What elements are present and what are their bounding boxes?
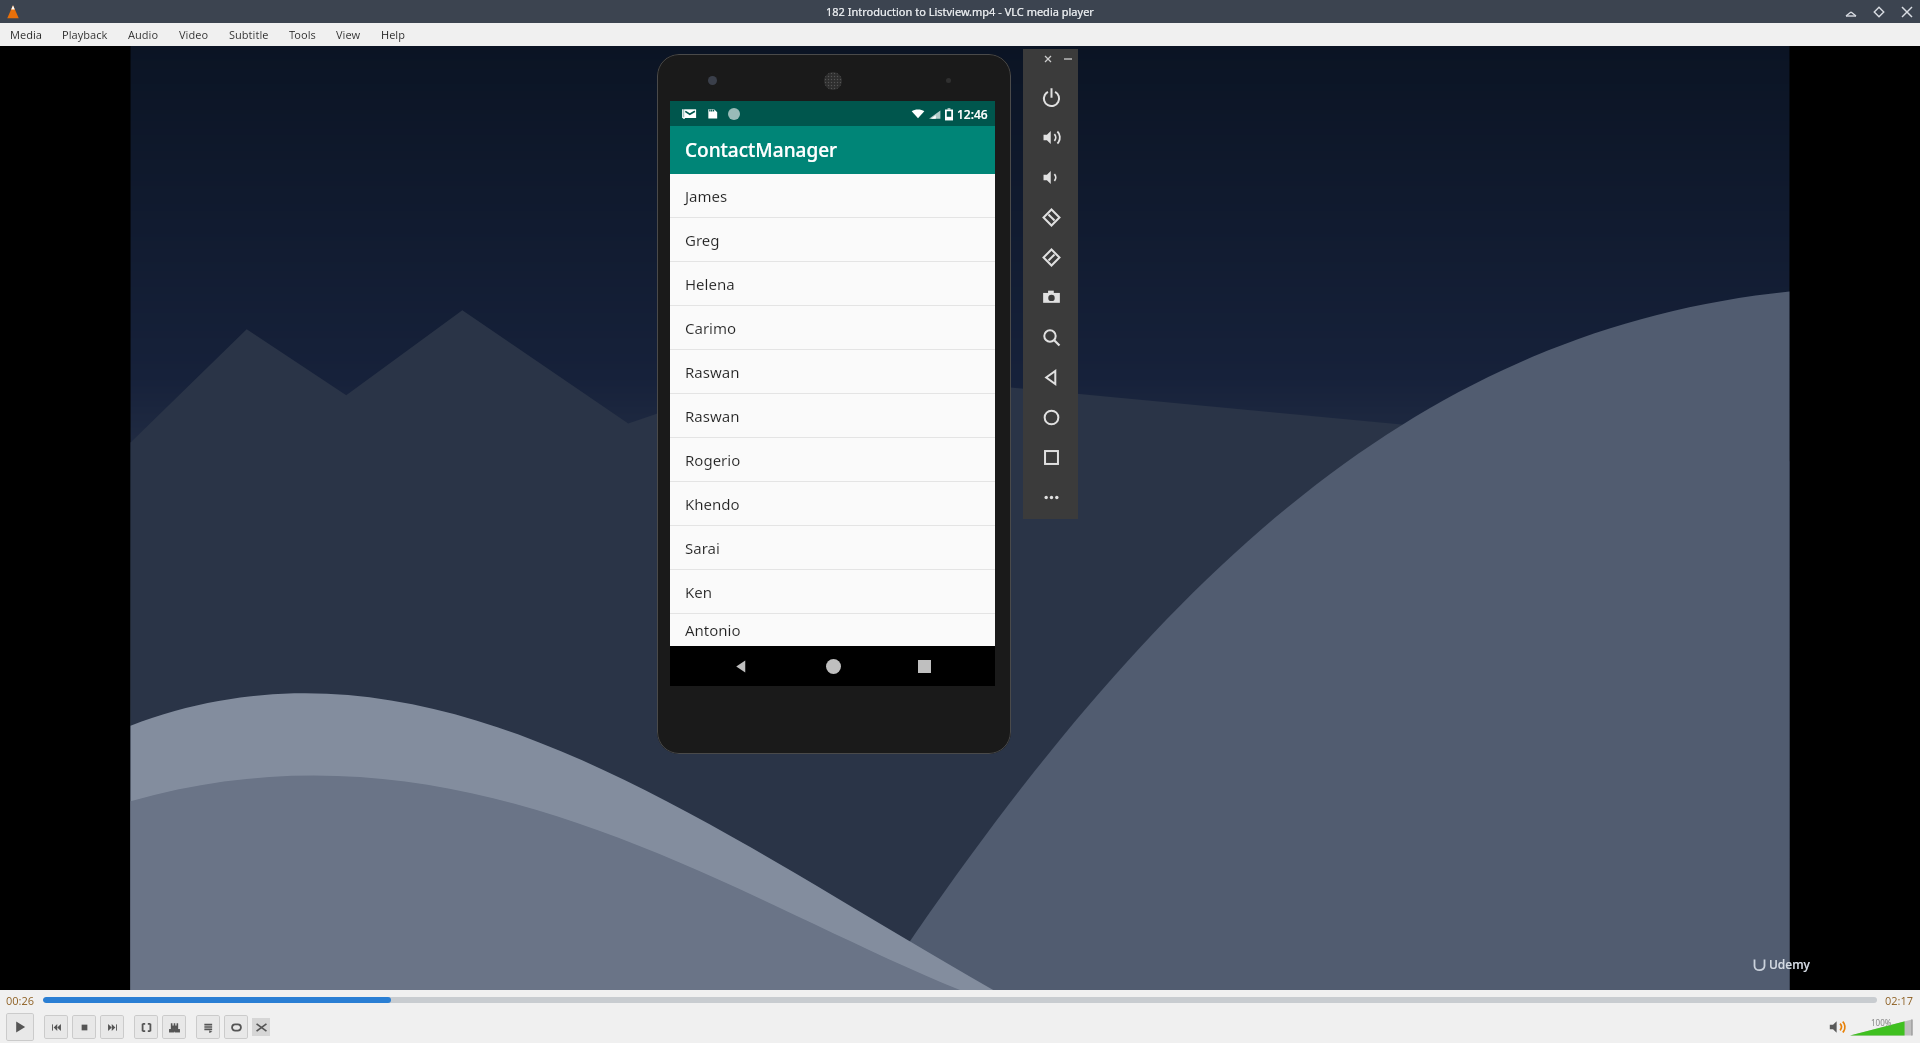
- staticText: ContactManager: [685, 137, 838, 163]
- button[interactable]: Rotate right: [1031, 237, 1071, 277]
- button[interactable]: Sarai: [670, 526, 995, 570]
- staticText: 02:17: [1885, 993, 1914, 1008]
- button[interactable]: Next: [100, 1015, 124, 1039]
- button[interactable]: Recents: [904, 646, 944, 686]
- button[interactable]: Volume up: [1031, 117, 1071, 157]
- button[interactable]: Zoom: [1031, 317, 1071, 357]
- button[interactable]: Audio: [118, 24, 169, 45]
- button[interactable]: Home: [813, 646, 853, 686]
- staticText: Video: [179, 27, 209, 42]
- staticText: Greg: [685, 230, 720, 250]
- button[interactable]: Playlist: [196, 1015, 220, 1039]
- staticText: James: [685, 186, 728, 206]
- button[interactable]: Rotate left: [1031, 197, 1071, 237]
- staticText: Media: [10, 27, 42, 42]
- button[interactable]: Helena: [670, 262, 995, 306]
- button[interactable]: Raswan: [670, 394, 995, 438]
- button[interactable]: Mute: [1828, 1018, 1846, 1036]
- button[interactable]: Close emulator: [1042, 53, 1054, 65]
- button[interactable]: Carimo: [670, 306, 995, 350]
- staticText: Raswan: [685, 362, 740, 382]
- staticText: Carimo: [685, 318, 737, 338]
- staticText: Udemy: [1769, 956, 1810, 972]
- button[interactable]: Volume: [1850, 1017, 1912, 1037]
- button[interactable]: James: [670, 174, 995, 218]
- button[interactable]: Greg: [670, 218, 995, 262]
- staticText: 182 Introduction to Listview.mp4 - VLC m…: [826, 4, 1094, 19]
- button[interactable]: Effects: [162, 1015, 186, 1039]
- button[interactable]: Khendo: [670, 482, 995, 526]
- staticText: Antonio: [685, 620, 741, 640]
- staticText: Sarai: [685, 538, 720, 558]
- button[interactable]: Stop: [72, 1015, 96, 1039]
- staticText: Helena: [685, 274, 735, 294]
- button[interactable]: Antonio: [670, 614, 995, 646]
- button[interactable]: Tools: [279, 24, 326, 45]
- button[interactable]: Fullscreen: [134, 1015, 158, 1039]
- button[interactable]: Minimize: [1844, 5, 1858, 19]
- staticText: 12:46: [957, 106, 988, 122]
- button[interactable]: Overview: [1031, 437, 1071, 477]
- button[interactable]: Video: [169, 24, 219, 45]
- button[interactable]: Ken: [670, 570, 995, 614]
- button[interactable]: Subtitle: [219, 24, 279, 45]
- staticText: View: [336, 27, 361, 42]
- button[interactable]: Volume down: [1031, 157, 1071, 197]
- button[interactable]: Playback: [52, 24, 118, 45]
- button[interactable]: Screenshot: [1031, 277, 1071, 317]
- staticText: Subtitle: [229, 27, 269, 42]
- button[interactable]: Rogerio: [670, 438, 995, 482]
- button[interactable]: Power: [1031, 77, 1071, 117]
- button[interactable]: Shuffle: [252, 1018, 270, 1036]
- staticText: Ken: [685, 582, 713, 602]
- button[interactable]: Maximize: [1872, 5, 1886, 19]
- staticText: Audio: [128, 27, 159, 42]
- button[interactable]: Close: [1900, 5, 1914, 19]
- staticText: Rogerio: [685, 450, 741, 470]
- staticText: Khendo: [685, 494, 740, 514]
- button[interactable]: Previous: [44, 1015, 68, 1039]
- button[interactable]: Media: [0, 24, 52, 45]
- staticText: Tools: [289, 27, 316, 42]
- staticText: Help: [381, 27, 405, 42]
- other: VLC: [4, 3, 22, 21]
- button[interactable]: Loop: [224, 1015, 248, 1039]
- button[interactable]: More: [1031, 477, 1071, 517]
- button[interactable]: View: [326, 24, 371, 45]
- button[interactable]: Help: [371, 24, 415, 45]
- button[interactable]: Raswan: [670, 350, 995, 394]
- staticText: 100%: [1871, 1017, 1892, 1028]
- button[interactable]: [43, 997, 1877, 1003]
- button[interactable]: Minimize emulator: [1062, 53, 1074, 65]
- button[interactable]: Play: [6, 1013, 34, 1041]
- button[interactable]: Back: [721, 646, 761, 686]
- button[interactable]: Home: [1031, 397, 1071, 437]
- staticText: Raswan: [685, 406, 740, 426]
- button[interactable]: Back: [1031, 357, 1071, 397]
- staticText: 00:26: [6, 993, 35, 1008]
- staticText: Playback: [62, 27, 108, 42]
